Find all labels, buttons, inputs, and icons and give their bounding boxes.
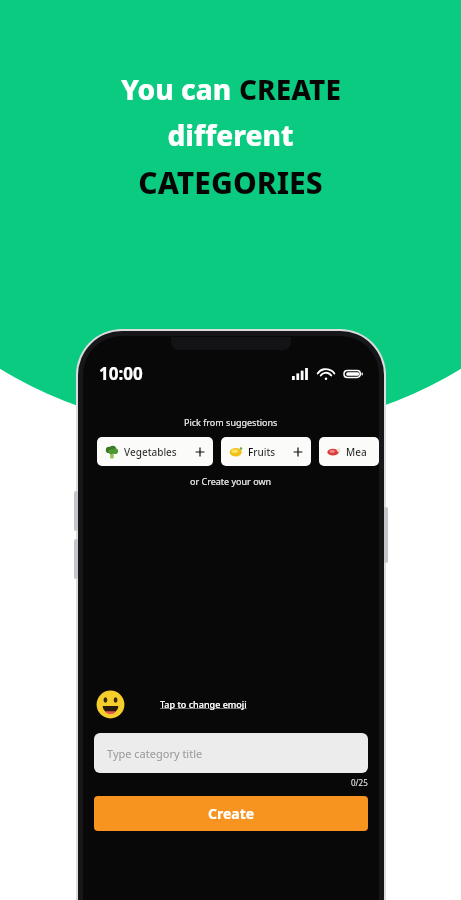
staticText: You can [121,70,239,108]
staticText: Fruits [248,445,276,459]
button[interactable]: Create [94,796,368,831]
button[interactable]: Tap to change emoji [160,698,247,710]
staticText: Create [208,804,255,823]
staticText: CATEGORIES [138,162,323,203]
button[interactable]: Type category title [94,733,368,773]
staticText: Tap to change emoji [160,698,247,710]
button[interactable]: Fruits [221,437,311,466]
button[interactable]: Change emoji [94,688,126,720]
staticText: Mea [346,445,367,459]
staticText: Vegetables [124,445,177,459]
staticText: 0/25 [351,777,368,788]
staticText: 10:00 [99,362,143,385]
staticText: different [167,116,294,154]
button[interactable]: Mea [319,437,379,466]
staticText: CREATE [239,70,341,108]
staticText: or Create your own [190,475,272,487]
staticText: Pick from suggestions [184,416,278,428]
staticText: Type category title [107,746,203,761]
button[interactable]: Vegetables [97,437,213,466]
